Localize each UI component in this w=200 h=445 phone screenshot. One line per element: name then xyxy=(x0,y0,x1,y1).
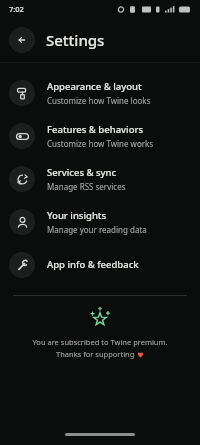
button[interactable]: Your insights xyxy=(0,200,200,243)
button[interactable]: Appearance & layout xyxy=(0,71,200,114)
staticText: Features & behaviors xyxy=(47,123,144,136)
staticText: Settings xyxy=(46,30,105,50)
staticText: 7:02 xyxy=(9,4,24,14)
button[interactable]: App info & feedback xyxy=(0,243,200,286)
staticText: Manage your reading data xyxy=(47,224,147,235)
staticText: Customize how Twine works xyxy=(47,138,154,149)
staticText: Customize how Twine looks xyxy=(47,95,151,106)
staticText: App info & feedback xyxy=(47,258,139,271)
button[interactable]: Back xyxy=(9,27,35,53)
staticText: Thanks for supporting xyxy=(56,349,137,359)
staticText: Services & sync xyxy=(47,166,117,179)
staticText: Manage RSS services xyxy=(47,181,126,192)
button[interactable]: Services & sync xyxy=(0,157,200,200)
staticText: Appearance & layout xyxy=(47,80,142,93)
button[interactable]: Features & behaviors xyxy=(0,114,200,157)
staticText: Your insights xyxy=(47,209,107,222)
staticText: You are subscribed to Twine premium. xyxy=(0,337,200,347)
